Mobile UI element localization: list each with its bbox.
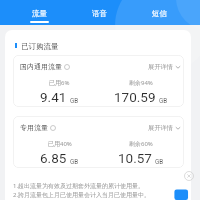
staticText: 1.超出流量为有效及过期套外流量的累计使用量。 (13, 182, 145, 190)
staticText: 短信 (152, 9, 167, 18)
button[interactable]: 在线客服 (170, 178, 192, 200)
staticText: 流量 (32, 9, 47, 18)
staticText: GB (70, 158, 79, 165)
staticText: 展开详情 (148, 124, 173, 132)
button[interactable]: 专用流量 (13, 116, 184, 168)
staticText: 10.57 (118, 150, 152, 166)
staticText: 剩余60% (129, 140, 153, 148)
staticText: 国内通用流量 (20, 62, 62, 71)
button[interactable]: 关闭 (184, 171, 194, 181)
staticText: 语音 (92, 9, 107, 18)
staticText: 2.跨月流量包上月已使用量会计入当月已使用量中。 (13, 191, 151, 199)
staticText: 9.41 (40, 89, 67, 105)
button[interactable]: 短信 (150, 0, 169, 23)
button[interactable]: 语音 (90, 0, 109, 23)
button[interactable]: 已订购流量 (14, 42, 59, 51)
staticText: 170.59 (114, 89, 156, 105)
staticText: GB (159, 97, 168, 104)
staticText: 展开详情 (148, 63, 173, 71)
staticText: 专用流量 (20, 123, 48, 132)
staticText: 6.85 (40, 150, 67, 166)
staticText: 已用40% (48, 140, 72, 148)
staticText: 已订购流量 (21, 42, 59, 51)
staticText: GB (155, 158, 164, 165)
staticText: 剩余94% (129, 79, 153, 87)
button[interactable]: 流量 (30, 0, 49, 23)
button[interactable]: 国内通用流量 (13, 55, 184, 107)
staticText: GB (70, 97, 79, 104)
staticText: 已用6% (49, 79, 70, 87)
